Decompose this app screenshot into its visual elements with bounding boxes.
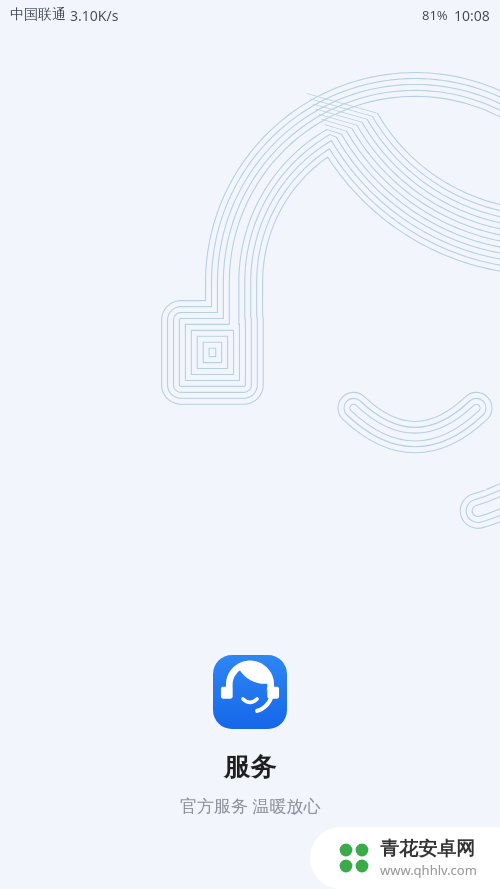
staticText: 3.10K/s [70, 6, 119, 25]
staticText: www.qhhlv.com [380, 861, 477, 879]
staticText: 中国联通 [10, 6, 66, 24]
staticText: 官方服务 温暖放心 [180, 794, 321, 817]
staticText: 81% [422, 6, 448, 24]
staticText: 10:08 [454, 6, 490, 25]
staticText: 青花安卓网 [380, 837, 475, 861]
staticText: 服务 [224, 751, 276, 784]
